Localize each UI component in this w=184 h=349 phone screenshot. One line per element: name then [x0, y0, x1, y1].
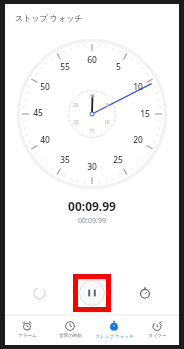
button[interactable]: Reset — [24, 278, 54, 308]
staticText: ストップ ウォッチ — [95, 333, 134, 339]
staticText: 20 — [73, 119, 79, 125]
staticText: 00:09.99 — [68, 198, 116, 214]
button[interactable]: タイマー — [136, 315, 178, 345]
staticText: 25 — [73, 102, 79, 108]
staticText: 50 — [40, 81, 50, 93]
staticText: 55 — [60, 61, 70, 73]
staticText: 60 — [87, 54, 97, 66]
staticText: 世界の時刻 — [59, 333, 82, 339]
staticText: 10 — [104, 119, 110, 125]
staticText: 00:09.99 — [78, 216, 106, 226]
staticText: 35 — [60, 154, 70, 166]
button[interactable]: アラーム — [6, 315, 48, 345]
staticText: ストップ ウォッチ — [15, 12, 83, 23]
staticText: タイマー — [148, 333, 167, 339]
staticText: 25 — [113, 154, 123, 166]
staticText: 40 — [40, 134, 50, 146]
staticText: 5 — [116, 61, 121, 73]
button[interactable]: Pause — [79, 280, 105, 306]
button[interactable]: Lap — [130, 278, 160, 308]
staticText: 5 — [106, 102, 109, 108]
button[interactable]: 世界の時刻 — [49, 315, 91, 345]
staticText: 15 — [140, 108, 150, 120]
button[interactable]: ストップ ウォッチ — [93, 315, 135, 345]
staticText: 15 — [89, 128, 95, 134]
staticText: 30 — [87, 161, 97, 173]
staticText: 30 — [89, 93, 95, 99]
staticText: アラーム — [18, 333, 37, 339]
staticText: 20 — [133, 134, 143, 146]
staticText: 45 — [33, 107, 43, 119]
staticText: 10 — [133, 81, 143, 93]
